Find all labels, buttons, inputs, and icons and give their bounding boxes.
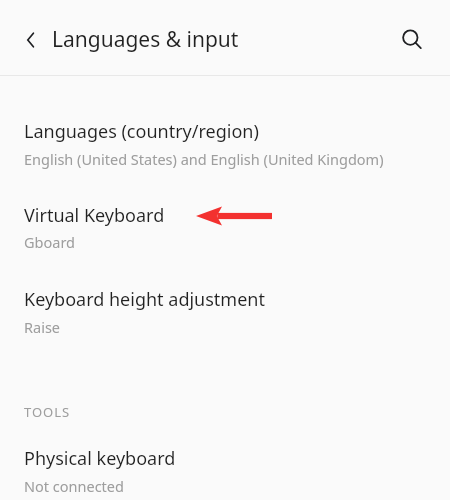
button[interactable]: Languages (country/region) xyxy=(0,104,450,182)
button[interactable]: Virtual Keyboard xyxy=(0,188,450,262)
staticText: Physical keyboard xyxy=(24,446,176,471)
staticText: English (United States) and English (Uni… xyxy=(24,149,384,169)
button[interactable]: Physical keyboard xyxy=(0,432,450,500)
staticText: Languages & input xyxy=(52,25,239,54)
staticText: Virtual Keyboard xyxy=(24,203,165,228)
staticText: Raise xyxy=(24,317,61,337)
staticText: Gboard xyxy=(24,232,75,252)
staticText: Not connected xyxy=(24,476,124,496)
button[interactable]: Back xyxy=(12,21,50,59)
staticText: Languages (country/region) xyxy=(24,119,259,144)
staticText: Keyboard height adjustment xyxy=(24,287,265,312)
button[interactable]: Keyboard height adjustment xyxy=(0,272,450,346)
button[interactable]: Search xyxy=(392,20,432,60)
staticText: TOOLS xyxy=(24,403,71,421)
